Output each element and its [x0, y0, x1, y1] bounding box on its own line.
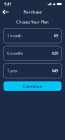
staticText: Purchase [23, 9, 41, 15]
staticText: 6 months [7, 51, 23, 56]
staticText: 9:41 [4, 1, 11, 7]
button[interactable]: 6 months [3, 46, 61, 61]
button[interactable]: 1 month [3, 28, 61, 43]
staticText: 1 year [7, 68, 18, 73]
staticText: $29 [52, 51, 58, 56]
button[interactable]: Continue [3, 81, 61, 91]
staticText: Choose Your Plan [16, 19, 49, 25]
staticText: Continue [23, 83, 42, 89]
staticText: 1 month [7, 33, 21, 38]
button[interactable]: Back [1, 8, 9, 16]
staticText: $9 [54, 33, 58, 38]
button[interactable]: 1 year [3, 63, 61, 78]
staticText: $49 [52, 68, 58, 73]
